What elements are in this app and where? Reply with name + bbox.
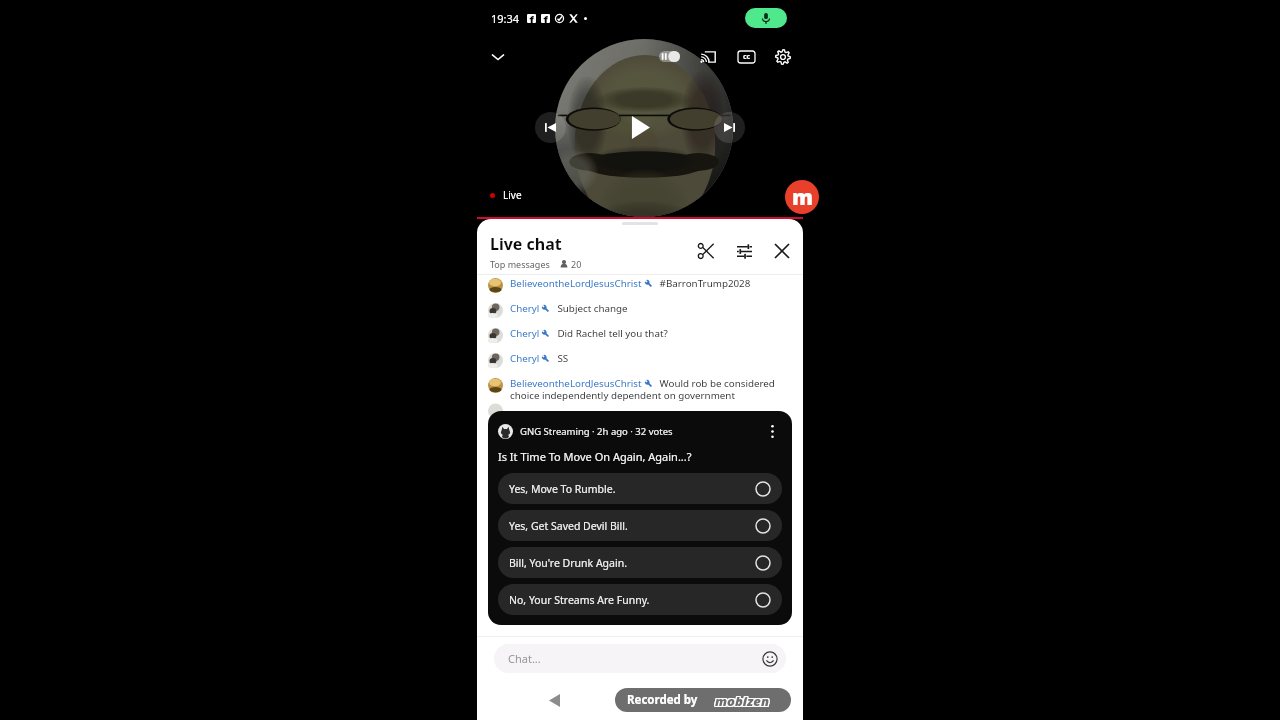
staticText: mobizen <box>715 692 769 708</box>
staticText: BelieveontheLordJesusChrist* Would rob b… <box>510 377 795 402</box>
button[interactable]: Back <box>541 687 567 713</box>
staticText: 20 <box>571 258 582 270</box>
button[interactable]: Captions <box>732 43 760 70</box>
button[interactable]: Create clip <box>691 236 721 266</box>
button[interactable]: Cheryl* Subject change <box>477 300 803 325</box>
staticText: GNG Streaming · 2h ago · 32 votes <box>520 425 673 438</box>
staticText: mobizen <box>714 693 768 709</box>
button[interactable]: Cast <box>694 43 722 70</box>
staticText: Cheryl* Did Rachel tell you that? <box>510 327 668 340</box>
staticText: No, Your Streams Are Funny. <box>509 593 650 607</box>
staticText: cc <box>743 52 751 62</box>
button[interactable]: Previous video <box>535 112 566 143</box>
staticText: Cheryl* SS <box>510 352 569 365</box>
staticText: Chat... <box>508 651 541 666</box>
button[interactable]: Yes, Move To Rumble. <box>498 473 782 504</box>
button[interactable]: BelieveontheLordJesusChrist* #BarronTrum… <box>477 275 803 300</box>
button[interactable]: Minimize <box>484 43 511 70</box>
button[interactable]: Chat... <box>494 644 786 673</box>
button[interactable]: No, Your Streams Are Funny. <box>498 584 782 615</box>
staticText: m <box>792 183 813 212</box>
button[interactable]: Settings <box>769 43 797 70</box>
button[interactable]: Mobizen recorder <box>785 180 819 214</box>
button[interactable]: Chat settings <box>729 236 759 266</box>
button[interactable]: Play <box>621 108 659 146</box>
button[interactable]: GNG Streaming · 2h ago · 32 votes <box>488 411 792 625</box>
staticText: Live chat <box>490 233 562 255</box>
button[interactable]: More options <box>762 421 782 441</box>
button[interactable]: Microphone active <box>745 8 787 28</box>
button[interactable]: Bill, You're Drunk Again. <box>498 547 782 578</box>
staticText: mobizen <box>715 693 769 709</box>
staticText: Top messages <box>490 258 550 270</box>
staticText: mobizen <box>716 692 770 708</box>
button[interactable]: Cheryl* Amen <box>477 408 803 411</box>
button[interactable]: Emoji <box>762 651 778 667</box>
staticText: Yes, Get Saved Devil Bill. <box>509 519 628 533</box>
staticText: mobizen <box>716 693 770 709</box>
staticText: mobizen <box>716 691 770 707</box>
button[interactable]: Recorded by Mobizen <box>615 688 791 712</box>
button[interactable]: Close live chat <box>767 236 797 266</box>
staticText: Yes, Move To Rumble. <box>509 482 616 496</box>
button[interactable]: Next video <box>714 112 745 143</box>
button[interactable]: Cheryl* Did Rachel tell you that? <box>477 325 803 350</box>
staticText: mobizen <box>714 691 768 707</box>
button[interactable]: Yes, Get Saved Devil Bill. <box>498 510 782 541</box>
staticText: 19:34 <box>491 11 520 26</box>
staticText: Recorded by <box>627 692 698 708</box>
staticText: Is It Time To Move On Again, Again...? <box>498 449 692 464</box>
staticText: BelieveontheLordJesusChrist* #BarronTrum… <box>510 277 751 290</box>
staticText: mobizen <box>714 692 768 708</box>
staticText: Cheryl* Subject change <box>510 302 628 315</box>
button[interactable]: Cheryl* SS <box>477 350 803 375</box>
staticText: mobizen <box>715 691 769 707</box>
staticText: Live <box>503 188 522 202</box>
button[interactable]: BelieveontheLordJesusChrist* Would rob b… <box>477 375 803 408</box>
staticText: Bill, You're Drunk Again. <box>509 556 627 570</box>
button[interactable]: Autoplay <box>654 43 684 70</box>
